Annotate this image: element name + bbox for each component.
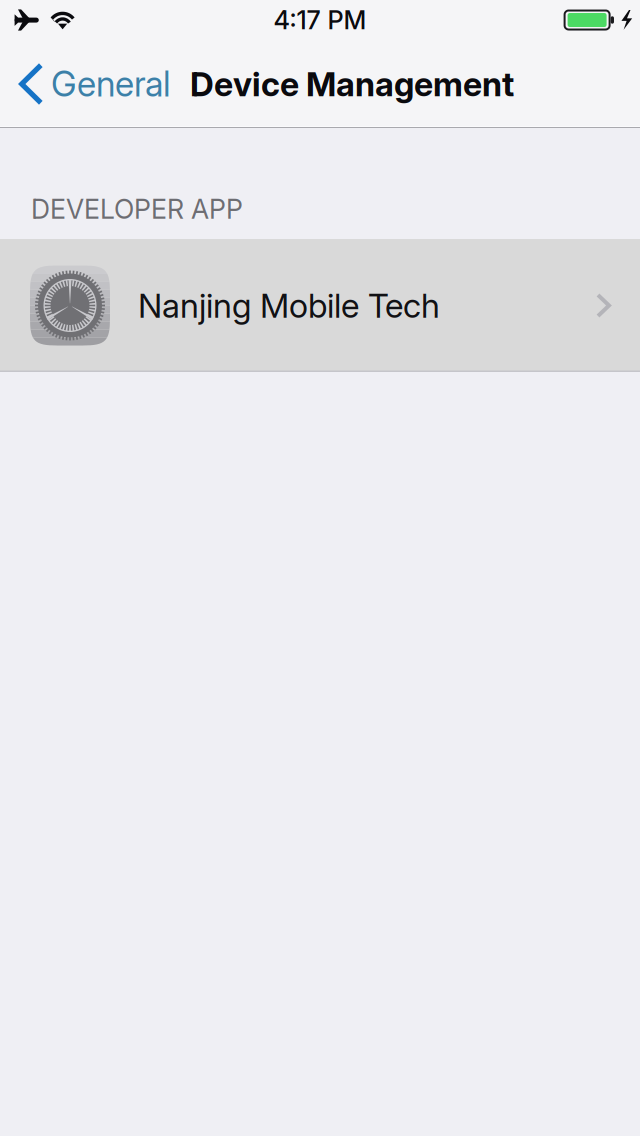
- staticText: Device Management: [190, 64, 514, 104]
- button[interactable]: General: [0, 40, 183, 128]
- button[interactable]: Nanjing Mobile Tech: [0, 239, 640, 372]
- staticText: Nanjing Mobile Tech: [138, 285, 440, 326]
- staticText: DEVELOPER APP: [31, 193, 243, 225]
- staticText: 4:17 PM: [273, 5, 366, 35]
- staticText: General: [51, 63, 171, 105]
